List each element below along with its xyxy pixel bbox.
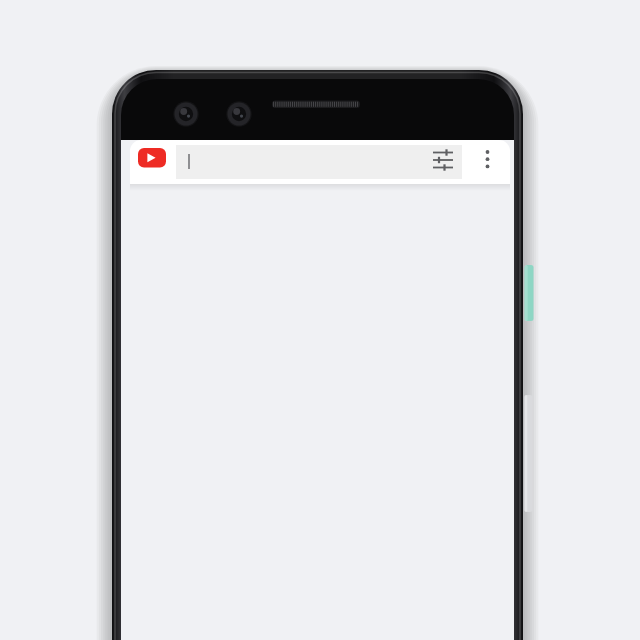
button[interactable]: YouTube home bbox=[138, 147, 168, 169]
button[interactable]: Power bbox=[520, 263, 536, 323]
button[interactable]: Volume bbox=[520, 393, 536, 514]
button[interactable]: More options bbox=[475, 145, 501, 175]
button[interactable]: Search YouTube bbox=[176, 145, 462, 175]
button[interactable]: Filter bbox=[430, 146, 458, 174]
